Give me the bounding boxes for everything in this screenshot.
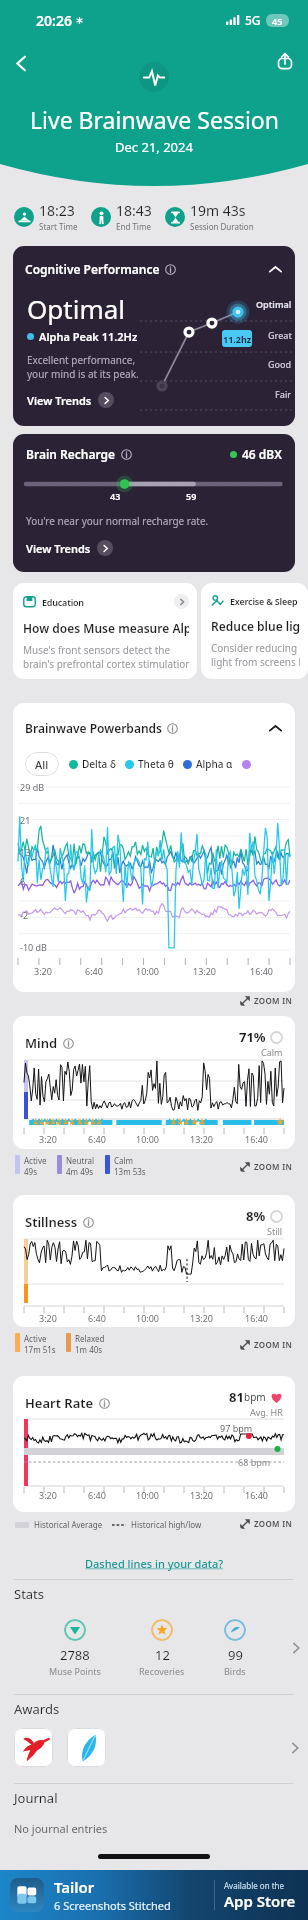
- staticText: Brain Recharge: [26, 446, 116, 462]
- staticText: Still: [267, 1225, 283, 1237]
- staticText: 6: [20, 875, 26, 887]
- staticText: Good: [268, 358, 292, 370]
- staticText: 99: [228, 1646, 243, 1664]
- button[interactable]: Share: [268, 44, 302, 78]
- button[interactable]: View Trends: [27, 392, 114, 408]
- button[interactable]: Back: [4, 46, 38, 80]
- staticText: Journal: [14, 1789, 58, 1807]
- staticText: 19m 43s: [190, 201, 246, 220]
- staticText: 71%: [239, 1028, 266, 1046]
- staticText: 18:43: [116, 201, 152, 220]
- staticText: Education: [42, 596, 84, 608]
- staticText: Great: [268, 329, 292, 341]
- staticText: 10:00: [136, 1133, 160, 1145]
- staticText: 81: [229, 1388, 244, 1406]
- button[interactable]: View Trends: [26, 540, 113, 556]
- staticText: Dashed lines in your data?: [85, 1556, 224, 1571]
- staticText: App Store: [224, 1891, 296, 1911]
- staticText: Relaxed: [75, 1333, 105, 1344]
- button[interactable]: Dashed lines in your data?: [85, 1556, 224, 1571]
- staticText: 10:00: [136, 965, 160, 977]
- staticText: 13:20: [193, 965, 217, 977]
- staticText: Optimal: [256, 298, 292, 310]
- staticText: Excellent performance, your mind is at i…: [27, 353, 139, 381]
- staticText: 16:40: [245, 1133, 269, 1145]
- staticText: Muse Points: [49, 1665, 101, 1677]
- staticText: 17m 51s: [24, 1344, 56, 1355]
- button[interactable]: Collapse: [263, 716, 287, 740]
- staticText: 2788: [60, 1646, 90, 1664]
- staticText: Recoveries: [139, 1665, 185, 1677]
- staticText: 13:20: [190, 1312, 214, 1324]
- button[interactable]: ZOOM IN: [240, 1161, 293, 1172]
- staticText: Historical high/low: [131, 1519, 202, 1530]
- button[interactable]: Education: [13, 583, 197, 679]
- staticText: 3:20: [39, 1312, 57, 1324]
- staticText: Delta δ: [82, 757, 116, 771]
- staticText: 6:40: [85, 965, 103, 977]
- button[interactable]: ZOOM IN: [240, 995, 293, 1006]
- staticText: 5G: [245, 12, 261, 28]
- staticText: Alpha Peak 11.2Hz: [39, 329, 138, 344]
- staticText: Calm: [114, 1155, 134, 1166]
- staticText: -10 dB: [20, 941, 47, 953]
- staticText: Consider reducing e light from screens b…: [211, 641, 300, 669]
- staticText: No journal entries: [14, 1821, 108, 1836]
- staticText: 20:26: [36, 11, 72, 30]
- staticText: 59: [186, 490, 197, 502]
- button[interactable]: ZOOM IN: [240, 1339, 293, 1350]
- staticText: 6:40: [88, 1489, 106, 1501]
- staticText: ZOOM IN: [254, 995, 293, 1006]
- staticText: 13:20: [190, 1133, 214, 1145]
- staticText: 6:40: [88, 1133, 106, 1145]
- staticText: Available on the: [224, 1880, 285, 1891]
- staticText: ZOOM IN: [254, 1339, 293, 1350]
- button[interactable]: [0, 1728, 308, 1767]
- staticText: You're near your normal recharge rate.: [26, 514, 209, 528]
- staticText: 16:40: [250, 965, 274, 977]
- staticText: Stats: [14, 1585, 45, 1603]
- staticText: 4m 49s: [66, 1166, 94, 1177]
- staticText: 46 dBX: [242, 446, 282, 462]
- staticText: Live Brainwave Session: [30, 104, 279, 135]
- staticText: 8%: [246, 1207, 266, 1225]
- staticText: 3:20: [39, 1133, 57, 1145]
- staticText: 29 dB: [20, 781, 45, 793]
- staticText: 21: [20, 814, 31, 826]
- staticText: Brainwave Powerbands: [25, 720, 162, 736]
- staticText: Tailor: [54, 1877, 95, 1897]
- staticText: Calm: [261, 1046, 283, 1058]
- staticText: -2: [20, 909, 29, 921]
- staticText: Session Duration: [190, 221, 254, 232]
- staticText: 3:20: [34, 965, 52, 977]
- staticText: End Time: [116, 221, 151, 232]
- staticText: View Trends: [26, 541, 91, 556]
- button[interactable]: ZOOM IN: [240, 1518, 293, 1529]
- staticText: Reduce blue light: [211, 618, 300, 634]
- staticText: Historical Average: [34, 1519, 103, 1530]
- staticText: 6 Screenshots Stitched: [54, 1898, 171, 1913]
- staticText: Theta θ: [138, 757, 174, 771]
- button[interactable]: Exercise & Sleep: [201, 583, 308, 679]
- staticText: Optimal: [27, 291, 125, 326]
- staticText: Awards: [14, 1700, 60, 1718]
- staticText: 10:00: [136, 1489, 160, 1501]
- staticText: Active: [24, 1333, 47, 1344]
- staticText: Active: [24, 1155, 47, 1166]
- button[interactable]: All: [25, 752, 59, 776]
- staticText: 1m 40s: [75, 1344, 103, 1355]
- staticText: Alpha α: [196, 757, 233, 771]
- staticText: 97 bpm: [220, 1422, 253, 1434]
- staticText: 16:40: [245, 1489, 269, 1501]
- staticText: 16:40: [245, 1312, 269, 1324]
- staticText: Fair: [275, 388, 292, 400]
- staticText: 10:00: [136, 1312, 160, 1324]
- button[interactable]: Collapse: [263, 257, 287, 281]
- staticText: ZOOM IN: [254, 1518, 293, 1529]
- staticText: 3:20: [39, 1489, 57, 1501]
- button[interactable]: 2788: [0, 1619, 308, 1677]
- staticText: ZOOM IN: [254, 1161, 293, 1172]
- staticText: 68 bpm: [238, 1456, 271, 1468]
- staticText: Birds: [224, 1665, 246, 1677]
- staticText: 6:40: [88, 1312, 106, 1324]
